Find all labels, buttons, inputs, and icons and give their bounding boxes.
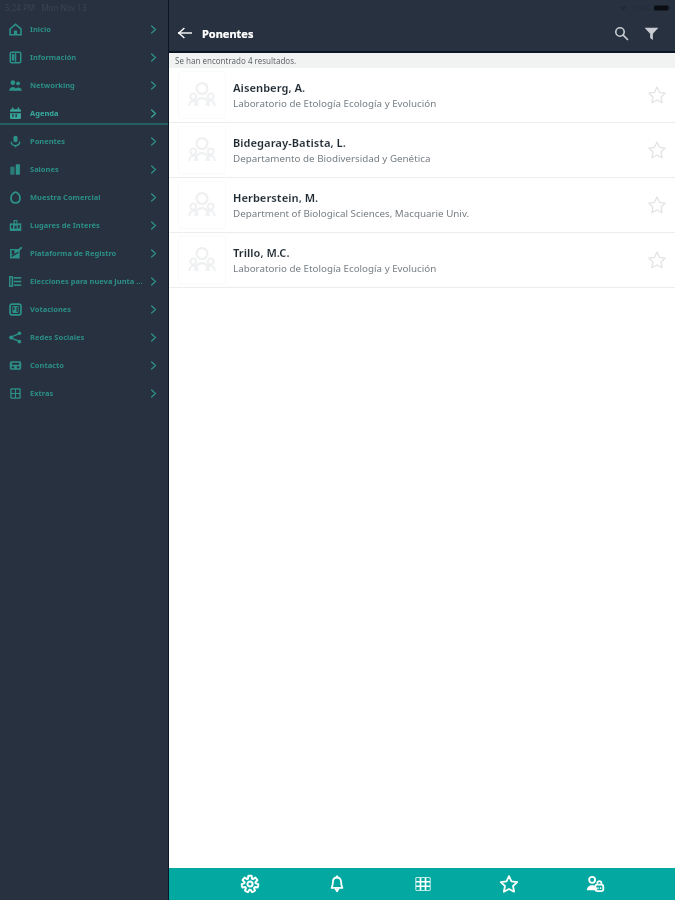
button[interactable]: Notifications — [293, 868, 380, 900]
button[interactable]: Agenda — [0, 99, 168, 127]
staticText: Departamento de Biodiversidad y Genética — [233, 152, 431, 165]
button[interactable]: Trillo, M.C. — [169, 233, 675, 287]
staticText: Contacto — [30, 360, 148, 370]
staticText: 5:24 PM Mon Nov 13 — [5, 2, 87, 13]
staticText: Agenda — [30, 108, 148, 118]
staticText: Se han encontrado 4 resultados. — [175, 55, 297, 66]
button[interactable]: Favorite — [640, 133, 674, 167]
button[interactable]: Search — [607, 19, 636, 48]
staticText: Networking — [30, 80, 148, 90]
staticText: Plataforma de Registro — [30, 248, 148, 258]
button[interactable]: Favorites — [466, 868, 552, 900]
button[interactable]: Contacto — [0, 351, 168, 379]
staticText: Información — [30, 52, 148, 62]
staticText: Herberstein, M. — [233, 190, 319, 205]
button[interactable]: Extras — [0, 379, 168, 407]
staticText: Inicio — [30, 24, 148, 34]
button[interactable]: Favorite — [640, 243, 674, 277]
staticText: Aisenberg, A. — [233, 80, 306, 95]
staticText: Department of Biological Sciences, Macqu… — [233, 207, 470, 220]
staticText: Muestra Comercial — [30, 192, 148, 202]
staticText: Ponentes — [30, 136, 148, 146]
button[interactable]: Redes Sociales — [0, 323, 168, 351]
button[interactable]: Favorite — [640, 78, 674, 112]
staticText: Salones — [30, 164, 148, 174]
button[interactable]: Elecciones para nueva Junta ... — [0, 267, 168, 295]
staticText: Votaciones — [30, 304, 148, 314]
button[interactable]: Información — [0, 43, 168, 71]
button[interactable]: Speakers — [552, 868, 638, 900]
staticText: Laboratorio de Etología Ecología y Evolu… — [233, 262, 437, 275]
button[interactable]: Lugares de Interés — [0, 211, 168, 239]
button[interactable]: Ponentes — [0, 127, 168, 155]
staticText: Redes Sociales — [30, 332, 148, 342]
staticText: Extras — [30, 388, 148, 398]
button[interactable]: Filter — [637, 19, 666, 48]
button[interactable]: Program grid — [380, 868, 466, 900]
button[interactable]: Salones — [0, 155, 168, 183]
staticText: Bidegaray-Batista, L. — [233, 135, 346, 150]
button[interactable]: Settings — [206, 868, 293, 900]
staticText: Laboratorio de Etología Ecología y Evolu… — [233, 97, 437, 110]
staticText: Elecciones para nueva Junta ... — [30, 276, 148, 286]
button[interactable]: Plataforma de Registro — [0, 239, 168, 267]
staticText: Trillo, M.C. — [233, 245, 290, 260]
button[interactable]: Back — [169, 17, 201, 49]
button[interactable]: Inicio — [0, 15, 168, 43]
button[interactable]: Aisenberg, A. — [169, 68, 675, 122]
button[interactable]: Muestra Comercial — [0, 183, 168, 211]
button[interactable]: Votaciones — [0, 295, 168, 323]
button[interactable]: Favorite — [640, 188, 674, 222]
staticText: Ponentes — [202, 26, 254, 41]
button[interactable]: Bidegaray-Batista, L. — [169, 123, 675, 177]
button[interactable]: Networking — [0, 71, 168, 99]
button[interactable]: Herberstein, M. — [169, 178, 675, 232]
staticText: Lugares de Interés — [30, 220, 148, 230]
